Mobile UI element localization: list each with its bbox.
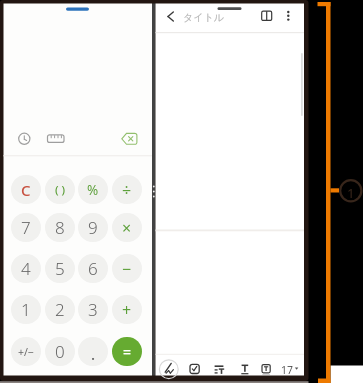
button[interactable] bbox=[120, 131, 138, 146]
button[interactable] bbox=[16, 131, 33, 147]
staticText: C bbox=[21, 180, 31, 200]
button[interactable]: 1 bbox=[11, 295, 41, 324]
button[interactable]: 7 bbox=[11, 213, 41, 242]
button[interactable]: 8 bbox=[45, 213, 75, 242]
button[interactable]: − bbox=[112, 254, 142, 283]
staticText: . bbox=[91, 344, 96, 364]
staticText: 3 bbox=[88, 298, 98, 321]
staticText: 1 bbox=[21, 298, 31, 321]
button[interactable]: タイトル bbox=[181, 11, 225, 24]
button[interactable]: +/− bbox=[11, 337, 41, 366]
button[interactable]: % bbox=[78, 175, 108, 204]
staticText: ( ) bbox=[55, 182, 66, 198]
button[interactable]: ( ) bbox=[45, 175, 75, 204]
staticText: = bbox=[123, 342, 132, 361]
button[interactable]: 17 bbox=[280, 363, 294, 376]
button[interactable]: 2 bbox=[45, 295, 75, 324]
button[interactable]: . bbox=[78, 337, 108, 366]
button[interactable] bbox=[164, 8, 180, 25]
button[interactable]: ÷ bbox=[112, 175, 142, 204]
button[interactable] bbox=[239, 362, 251, 375]
button[interactable] bbox=[159, 359, 179, 379]
staticText: % bbox=[87, 181, 99, 199]
staticText: 8 bbox=[55, 216, 65, 239]
button[interactable] bbox=[259, 8, 274, 23]
staticText: 4 bbox=[21, 257, 31, 280]
staticText: 7 bbox=[21, 216, 31, 239]
button[interactable]: 4 bbox=[11, 254, 41, 283]
staticText: 6 bbox=[88, 257, 98, 280]
button[interactable] bbox=[188, 362, 201, 375]
button[interactable]: 6 bbox=[78, 254, 108, 283]
staticText: 1 bbox=[347, 184, 355, 198]
staticText: 5 bbox=[55, 257, 65, 280]
staticText: 17 bbox=[281, 363, 294, 376]
staticText: 9 bbox=[88, 216, 98, 239]
button[interactable]: 5 bbox=[45, 254, 75, 283]
button[interactable]: = bbox=[112, 337, 142, 366]
staticText: 2 bbox=[55, 298, 65, 321]
button[interactable]: C bbox=[11, 175, 41, 204]
button[interactable] bbox=[213, 362, 226, 375]
staticText: 0 bbox=[55, 340, 65, 363]
staticText: ÷ bbox=[122, 179, 132, 201]
button[interactable] bbox=[46, 131, 65, 146]
button[interactable]: × bbox=[112, 213, 142, 242]
staticText: +/− bbox=[18, 345, 34, 359]
staticText: × bbox=[122, 217, 132, 239]
staticText: − bbox=[122, 258, 132, 280]
staticText: + bbox=[122, 299, 132, 321]
button[interactable] bbox=[260, 362, 272, 375]
button[interactable]: + bbox=[112, 295, 142, 324]
button[interactable] bbox=[281, 8, 295, 23]
button[interactable]: 9 bbox=[78, 213, 108, 242]
button[interactable]: 0 bbox=[45, 337, 75, 366]
button[interactable]: 3 bbox=[78, 295, 108, 324]
staticText: タイトル bbox=[183, 11, 224, 24]
